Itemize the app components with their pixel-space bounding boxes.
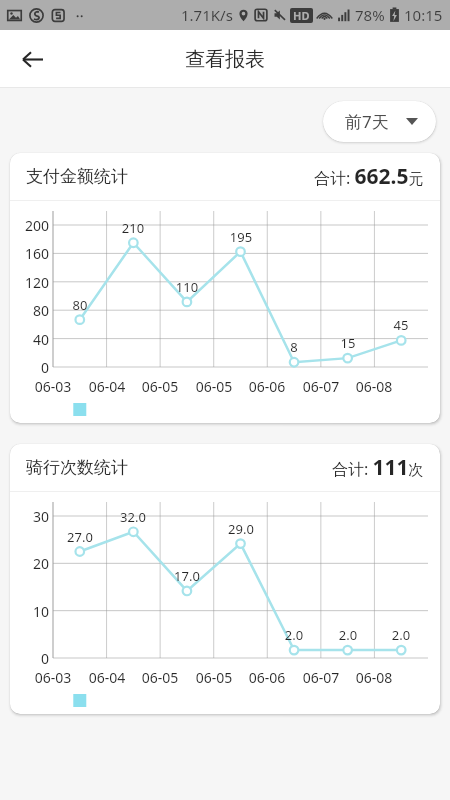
staticText: 78%	[355, 5, 385, 25]
staticText: 06-03	[27, 377, 79, 396]
staticText: 06-06	[241, 377, 293, 396]
staticText: 合计: 662.5元	[314, 162, 424, 191]
staticText: 06-04	[81, 668, 133, 687]
staticText: 前7天	[345, 110, 389, 133]
staticText: HD	[293, 8, 310, 23]
staticText: 80	[10, 301, 49, 320]
staticText: 06-06	[241, 668, 293, 687]
staticText: 80	[54, 296, 106, 314]
staticText: 06-05	[134, 668, 186, 687]
staticText: 骑行次数统计	[26, 457, 128, 478]
staticText: 0	[10, 649, 49, 668]
staticText: 8	[268, 338, 320, 356]
staticText: 30	[10, 507, 49, 526]
staticText: 2.0	[375, 626, 427, 644]
staticText: 29.0	[215, 520, 267, 538]
staticText: 06-07	[295, 668, 347, 687]
staticText: 06-07	[295, 377, 347, 396]
staticText: 160	[10, 244, 49, 263]
button[interactable]: 骑行次数统计	[10, 444, 440, 714]
staticText: 查看报表	[185, 47, 265, 72]
staticText: 110	[161, 278, 213, 296]
button[interactable]: Back	[9, 36, 55, 82]
staticText: 06-05	[134, 377, 186, 396]
staticText: 17.0	[161, 567, 213, 585]
staticText: 40	[10, 330, 49, 349]
staticText: 32.0	[107, 508, 159, 526]
staticText: 20	[10, 554, 49, 573]
staticText: 10:15	[404, 5, 443, 25]
staticText: 27.0	[54, 528, 106, 546]
staticText: 15	[322, 334, 374, 352]
button[interactable]: 支付金额统计	[10, 153, 440, 423]
staticText: 10	[10, 602, 49, 621]
staticText: 45	[375, 316, 427, 334]
staticText: 210	[107, 219, 159, 237]
staticText: 06-05	[188, 377, 240, 396]
button[interactable]: 前7天	[323, 101, 436, 142]
staticText: 0	[10, 358, 49, 377]
staticText: 200	[10, 216, 49, 235]
staticText: 2.0	[268, 626, 320, 644]
staticText: 06-05	[188, 668, 240, 687]
staticText: 195	[215, 228, 267, 246]
staticText: 支付金额统计	[26, 166, 128, 187]
staticText: 1.71K/s	[181, 5, 233, 25]
staticText: 06-08	[348, 668, 400, 687]
staticText: 06-03	[27, 668, 79, 687]
staticText: 2.0	[322, 626, 374, 644]
staticText: 合计: 111次	[332, 453, 424, 482]
staticText: 06-08	[348, 377, 400, 396]
staticText: 06-04	[81, 377, 133, 396]
staticText: 120	[10, 273, 49, 292]
